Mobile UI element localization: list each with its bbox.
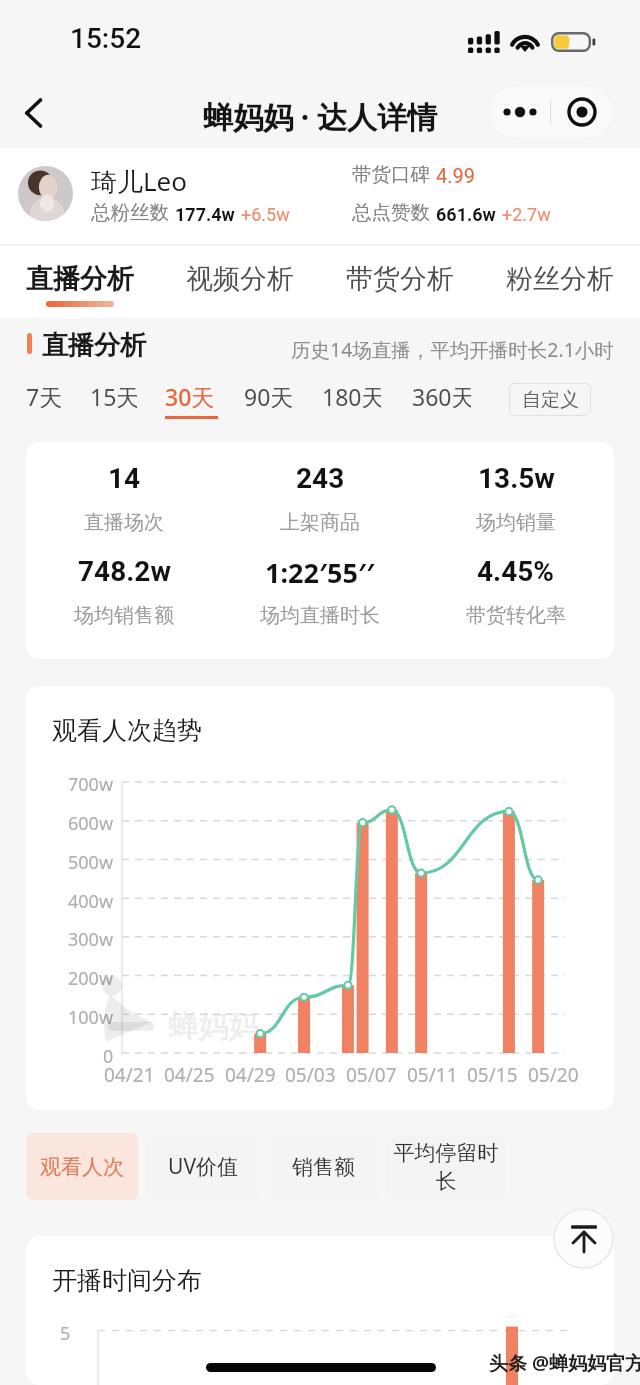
staticText: 5 [60, 1321, 71, 1346]
staticText: 历史14场直播，平均开播时长2.1小时 [291, 336, 614, 363]
staticText: +2.7w [502, 204, 551, 225]
staticText: 直播场次 [84, 510, 164, 535]
button[interactable]: 带货分析 [320, 244, 480, 318]
staticText: 直播分析 [42, 329, 146, 362]
staticText: 13.5w [478, 462, 555, 495]
staticText: 600w [68, 811, 114, 836]
button[interactable]: 180天 [322, 381, 381, 421]
staticText: 场均销售额 [74, 603, 174, 628]
staticText: 总点赞数 [352, 200, 430, 225]
staticText: 180天 [322, 381, 381, 412]
staticText: 上架商品 [280, 510, 360, 535]
staticText: 360天 [412, 381, 471, 412]
staticText: 头条 @蝉妈妈官方 [489, 1350, 640, 1376]
staticText: 05/15 [467, 1062, 518, 1088]
staticText: 05/20 [528, 1062, 579, 1088]
staticText: 14 [108, 462, 141, 495]
staticText: 05/03 [285, 1062, 336, 1088]
staticText: 90天 [244, 381, 292, 412]
staticText: 蝉妈妈 [168, 1008, 258, 1046]
staticText: 视频分析 [186, 262, 294, 296]
staticText: 4.99 [436, 164, 475, 187]
staticText: 177.4w [175, 204, 235, 225]
staticText: UV价值 [168, 1152, 238, 1181]
staticText: 自定义 [522, 388, 579, 412]
button[interactable]: 15天 [90, 381, 137, 421]
staticText: 04/29 [225, 1062, 276, 1088]
button[interactable]: Scroll to top [553, 1208, 614, 1269]
staticText: 观看人次 [40, 1154, 124, 1180]
other: More options [490, 87, 550, 137]
staticText: 100w [68, 1005, 114, 1030]
button[interactable]: 销售额 [268, 1133, 379, 1200]
staticText: 0 [103, 1044, 114, 1069]
staticText: 748.2w [78, 555, 171, 588]
staticText: 661.6w [436, 204, 496, 225]
button[interactable]: 7天 [26, 381, 61, 421]
staticText: 05/07 [346, 1062, 397, 1088]
staticText: 总粉丝数 [91, 200, 169, 225]
staticText: 1:22′55′′ [265, 554, 375, 591]
button[interactable]: 视频分析 [160, 244, 320, 318]
button[interactable]: 360天 [412, 381, 471, 421]
staticText: 琦儿Leo [91, 163, 188, 199]
button[interactable]: 直播分析 [0, 244, 160, 318]
staticText: 243 [296, 462, 345, 495]
button[interactable]: More options [490, 87, 612, 137]
button[interactable]: Back [10, 89, 58, 137]
staticText: 蝉妈妈 · 达人详情 [203, 96, 438, 137]
staticText: 观看人次趋势 [52, 715, 202, 746]
staticText: 05/11 [407, 1062, 458, 1088]
staticText: 带货口碑 [352, 162, 430, 187]
staticText: 30天 [165, 381, 215, 412]
staticText: 4.45% [477, 555, 555, 588]
staticText: 带货分析 [346, 262, 454, 296]
button[interactable]: 自定义 [509, 383, 591, 416]
staticText: 400w [68, 889, 114, 914]
staticText: 场均直播时长 [260, 603, 380, 628]
button[interactable]: 观看人次 [26, 1133, 138, 1200]
staticText: 销售额 [292, 1154, 355, 1180]
staticText: 700w [68, 772, 114, 797]
staticText: 开播时间分布 [52, 1265, 202, 1296]
staticText: +6.5w [241, 204, 290, 225]
staticText: 300w [68, 927, 114, 952]
staticText: 04/25 [164, 1062, 215, 1088]
button[interactable]: 平均停留时长 [387, 1133, 505, 1200]
staticText: 200w [68, 966, 114, 991]
other: Close mini program [551, 87, 612, 137]
staticText: 7天 [26, 381, 61, 412]
staticText: 15天 [90, 381, 137, 412]
staticText: 04/21 [104, 1062, 155, 1088]
button[interactable]: 粉丝分析 [480, 244, 640, 318]
staticText: 500w [68, 850, 114, 875]
button[interactable]: 30天 [165, 381, 218, 421]
button[interactable]: 90天 [244, 381, 292, 421]
staticText: 带货转化率 [466, 603, 566, 628]
staticText: 粉丝分析 [506, 262, 614, 296]
staticText: 平均停留时长 [389, 1140, 503, 1194]
staticText: 场均销量 [476, 510, 556, 535]
staticText: 直播分析 [26, 262, 134, 296]
staticText: 15:52 [70, 22, 142, 55]
button[interactable]: UV价值 [147, 1133, 259, 1200]
